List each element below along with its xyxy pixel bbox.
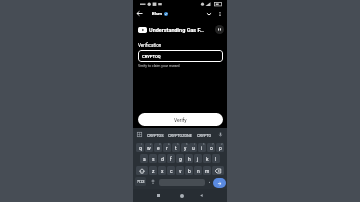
staticText: CRYPTOZONE xyxy=(168,133,192,137)
staticText: v xyxy=(179,168,182,174)
button[interactable]: Voice input xyxy=(217,131,224,138)
staticText: 4 xyxy=(168,143,170,146)
button[interactable]: u xyxy=(189,143,197,152)
button[interactable]: y xyxy=(181,143,189,152)
button[interactable]: Period xyxy=(206,177,212,186)
staticText: g xyxy=(179,156,182,162)
button[interactable]: s xyxy=(149,154,157,163)
button[interactable]: a xyxy=(140,154,148,163)
button[interactable]: t xyxy=(172,143,180,152)
staticText: w xyxy=(147,145,151,151)
staticText: Verification xyxy=(138,43,162,48)
button[interactable]: Pause xyxy=(215,25,224,34)
button[interactable]: o xyxy=(207,143,215,152)
staticText: 1 xyxy=(141,143,143,146)
staticText: n xyxy=(197,168,200,174)
staticText: s xyxy=(152,156,155,162)
button[interactable]: w xyxy=(145,143,153,152)
button[interactable]: Delete xyxy=(212,166,224,175)
staticText: f xyxy=(170,156,172,162)
staticText: 2 xyxy=(150,143,152,146)
button[interactable]: Verify xyxy=(138,113,223,126)
button[interactable]: d xyxy=(158,154,166,163)
button[interactable]: i xyxy=(198,143,206,152)
staticText: c xyxy=(170,168,173,174)
button[interactable]: p xyxy=(216,143,224,152)
staticText: k xyxy=(206,156,209,162)
button[interactable]: Enter xyxy=(213,178,226,188)
staticText: z xyxy=(152,168,155,174)
button[interactable]: Recents xyxy=(153,190,164,201)
button[interactable]: Comma xyxy=(148,177,157,186)
staticText: 6 xyxy=(186,143,188,146)
button[interactable]: Back xyxy=(135,9,144,18)
staticText: q xyxy=(139,145,142,151)
staticText: CRYPTO xyxy=(197,133,212,137)
button[interactable]: z xyxy=(149,166,157,175)
button[interactable]: r xyxy=(163,143,171,152)
staticText: x xyxy=(161,168,164,174)
staticText: l xyxy=(215,156,217,162)
staticText: t xyxy=(175,145,177,151)
button[interactable]: Shift xyxy=(136,166,148,175)
button[interactable]: e xyxy=(154,143,162,152)
button[interactable]: More options xyxy=(215,9,224,18)
staticText: i xyxy=(201,145,203,151)
button[interactable]: j xyxy=(194,154,202,163)
staticText: a xyxy=(143,156,146,162)
staticText: 8 xyxy=(203,143,205,146)
button[interactable]: Expand xyxy=(204,9,213,18)
button[interactable]: Back xyxy=(196,190,207,201)
button[interactable]: v xyxy=(176,166,184,175)
staticText: Verify to claim your reward xyxy=(138,64,180,68)
staticText: p xyxy=(219,145,222,151)
staticText: d xyxy=(161,156,164,162)
staticText: j xyxy=(197,156,199,162)
button[interactable]: Home xyxy=(176,190,187,201)
button[interactable]: ?123 xyxy=(135,177,146,186)
staticText: m xyxy=(205,168,210,174)
button[interactable]: x xyxy=(158,166,166,175)
staticText: o xyxy=(210,145,213,151)
staticText: ?123 xyxy=(137,180,145,184)
staticText: CRYPTOQ xyxy=(142,54,161,59)
button[interactable]: b xyxy=(185,166,193,175)
staticText: h xyxy=(188,156,191,162)
staticText: 9 xyxy=(212,143,214,146)
staticText: u xyxy=(192,145,195,151)
staticText: 0 xyxy=(221,143,223,146)
button[interactable]: l xyxy=(212,154,220,163)
staticText: 3 xyxy=(159,143,161,146)
staticText: Understanding Gas F… xyxy=(149,27,204,33)
staticText: Verify xyxy=(174,117,187,123)
staticText: y xyxy=(184,145,187,151)
staticText: b xyxy=(188,168,191,174)
button[interactable]: CRYPTOQ xyxy=(138,50,223,62)
button[interactable]: c xyxy=(167,166,175,175)
button[interactable]: Keyboard toolbar xyxy=(136,131,143,138)
button[interactable]: g xyxy=(176,154,184,163)
button[interactable]: q xyxy=(136,143,144,152)
staticText: CRYPTOS xyxy=(147,133,164,137)
staticText: Blum xyxy=(152,11,163,16)
button[interactable]: k xyxy=(203,154,211,163)
button[interactable]: h xyxy=(185,154,193,163)
staticText: 7 xyxy=(194,143,196,146)
button[interactable]: m xyxy=(203,166,211,175)
staticText: e xyxy=(157,145,160,151)
button[interactable]: f xyxy=(167,154,175,163)
staticText: r xyxy=(166,145,168,151)
button[interactable]: n xyxy=(194,166,202,175)
staticText: 5 xyxy=(177,143,179,146)
